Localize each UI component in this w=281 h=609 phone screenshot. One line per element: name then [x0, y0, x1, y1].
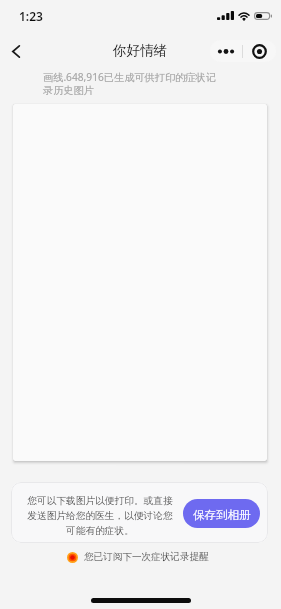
button[interactable]: 保存到相册: [183, 499, 260, 528]
button[interactable]: More: [210, 40, 242, 62]
staticText: 你好情绪: [113, 42, 168, 59]
staticText: 您可以下载图片以便打印。或直接发送图片给您的医生，以便讨论您可能有的症状。: [25, 495, 175, 537]
staticText: 保存到相册: [193, 508, 251, 522]
button[interactable]: Back: [1, 36, 31, 66]
staticText: 画线.648,916已生成可供打印的症状记录历史图片: [43, 70, 223, 97]
staticText: 1:23: [19, 8, 43, 24]
button[interactable]: Close mini program: [243, 40, 276, 62]
staticText: 您已订阅下一次症状记录提醒: [84, 551, 209, 563]
